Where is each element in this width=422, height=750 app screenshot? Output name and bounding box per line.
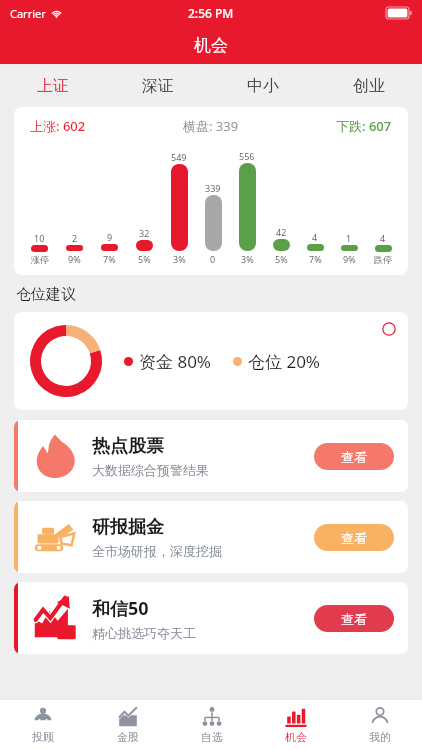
button[interactable]: 金股 bbox=[85, 700, 170, 750]
button[interactable]: 我的 bbox=[338, 700, 422, 750]
button[interactable]: 和信50 bbox=[14, 582, 408, 654]
staticText: 42 bbox=[276, 226, 287, 238]
staticText: 2 bbox=[72, 232, 78, 244]
staticText: 我的 bbox=[369, 730, 391, 744]
staticText: 跌停 bbox=[374, 254, 392, 265]
staticText: 2:56 PM bbox=[188, 5, 234, 21]
staticText: 仓位建议 bbox=[16, 285, 76, 304]
staticText: 7% bbox=[309, 253, 322, 265]
staticText: 横盘: 339 bbox=[183, 117, 239, 135]
staticText: 4 bbox=[312, 231, 318, 243]
staticText: 7% bbox=[103, 253, 116, 265]
staticText: 查看 bbox=[341, 611, 367, 627]
staticText: 全市场研报，深度挖掘 bbox=[92, 543, 222, 559]
staticText: 32 bbox=[139, 227, 150, 239]
staticText: 研报掘金 bbox=[92, 516, 164, 539]
button[interactable]: 查看 bbox=[314, 443, 394, 470]
staticText: 大数据综合预警结果 bbox=[92, 462, 209, 478]
staticText: 查看 bbox=[341, 530, 367, 546]
button[interactable]: 上涨: 602 bbox=[14, 107, 408, 275]
staticText: 深证 bbox=[142, 76, 174, 96]
staticText: 10 bbox=[34, 232, 45, 244]
button[interactable]: 自选 bbox=[170, 700, 254, 750]
button[interactable]: 资金 80% bbox=[14, 312, 408, 410]
staticText: 4 bbox=[380, 232, 386, 244]
button[interactable]: 查看 bbox=[314, 524, 394, 551]
staticText: 上证 bbox=[37, 76, 69, 96]
staticText: 机会 bbox=[194, 35, 228, 56]
staticText: 9% bbox=[68, 253, 81, 265]
staticText: 机会 bbox=[285, 730, 307, 744]
staticText: 查看 bbox=[341, 449, 367, 465]
staticText: 339 bbox=[205, 182, 221, 194]
staticText: 中小 bbox=[247, 76, 279, 96]
staticText: 0 bbox=[210, 253, 216, 265]
other: 帮助 bbox=[382, 322, 396, 336]
button[interactable]: 深证 bbox=[105, 64, 210, 107]
staticText: 5% bbox=[275, 253, 288, 265]
staticText: 和信50 bbox=[92, 596, 149, 621]
button[interactable]: 研报掘金 bbox=[14, 501, 408, 573]
staticText: 创业 bbox=[353, 76, 385, 96]
staticText: 涨停 bbox=[31, 254, 49, 265]
staticText: 9 bbox=[107, 231, 113, 243]
button[interactable]: 中小 bbox=[210, 64, 316, 107]
button[interactable]: 上证 bbox=[0, 64, 105, 107]
staticText: 556 bbox=[239, 150, 255, 162]
staticText: 下跌: 607 bbox=[336, 117, 392, 135]
button[interactable]: 机会 bbox=[254, 700, 338, 750]
staticText: 3% bbox=[241, 253, 254, 265]
staticText: 9% bbox=[343, 253, 356, 265]
staticText: 资金 80% bbox=[139, 350, 211, 373]
staticText: 金股 bbox=[117, 730, 139, 744]
button[interactable]: 查看 bbox=[314, 605, 394, 632]
button[interactable]: 投顾 bbox=[0, 700, 85, 750]
button[interactable]: 创业 bbox=[316, 64, 422, 107]
staticText: 精心挑选巧夺天工 bbox=[92, 625, 196, 641]
staticText: 5% bbox=[138, 253, 151, 265]
staticText: 仓位 20% bbox=[248, 350, 320, 373]
staticText: 1 bbox=[346, 232, 352, 244]
button[interactable]: 热点股票 bbox=[14, 420, 408, 492]
staticText: 上涨: 602 bbox=[30, 117, 86, 135]
staticText: Carrier bbox=[10, 6, 46, 21]
staticText: 自选 bbox=[201, 730, 223, 744]
staticText: 热点股票 bbox=[92, 435, 164, 458]
staticText: 549 bbox=[171, 151, 187, 163]
staticText: 3% bbox=[173, 253, 186, 265]
staticText: 投顾 bbox=[32, 730, 54, 744]
